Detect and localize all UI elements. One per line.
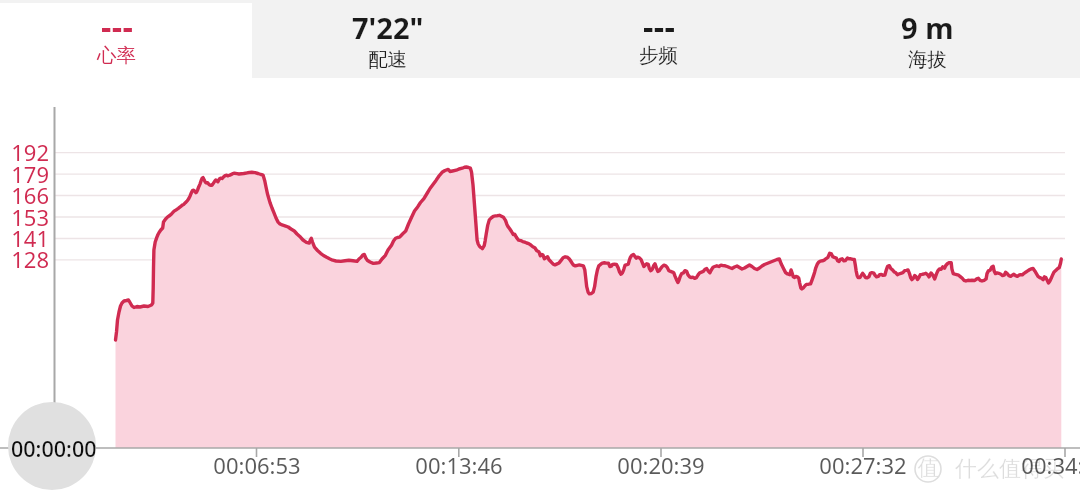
button[interactable]: 7'22" (252, 0, 523, 78)
staticText: 141 (0, 223, 49, 253)
staticText: 00:06:53 (167, 450, 347, 480)
staticText: 00:34:25 (975, 450, 1080, 480)
button[interactable]: 步频 (523, 0, 794, 78)
staticText: 海拔 (908, 47, 947, 72)
staticText: 153 (0, 202, 49, 232)
staticText: 心率 (97, 43, 136, 68)
staticText: 配速 (368, 47, 407, 72)
staticText: 什么值得买 (955, 455, 1065, 483)
staticText: 179 (0, 159, 49, 189)
staticText: 00:20:39 (571, 450, 751, 480)
staticText: 00:00:00 (11, 434, 96, 463)
staticText: 128 (0, 244, 49, 274)
staticText: 步频 (639, 43, 678, 68)
staticText: 00:13:46 (369, 450, 549, 480)
button[interactable]: 9 m (794, 0, 1061, 78)
staticText: 值 (914, 455, 942, 481)
button[interactable]: 心率 (0, 0, 252, 78)
staticText: 9 m (901, 8, 954, 47)
staticText: 192 (0, 137, 49, 167)
button[interactable]: 00:00:00 (8, 402, 96, 490)
staticText: 7'22" (352, 8, 424, 47)
staticText: 00:27:32 (773, 450, 953, 480)
staticText: 166 (0, 180, 49, 210)
